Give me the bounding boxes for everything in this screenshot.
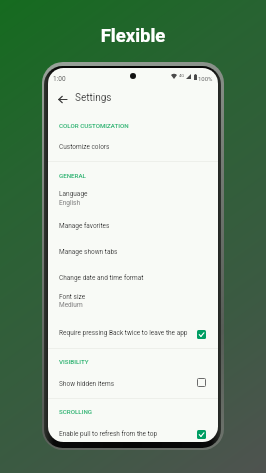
staticText: Manage favorites <box>59 222 110 230</box>
staticText: 100% <box>198 75 213 82</box>
button[interactable] <box>48 288 218 315</box>
staticText: Language <box>59 190 88 198</box>
staticText: Customize colors <box>59 143 110 151</box>
button[interactable] <box>48 372 218 395</box>
staticText: GENERAL <box>59 172 86 179</box>
button[interactable]: Back <box>53 90 71 108</box>
staticText: COLOR CUSTOMIZATION <box>59 122 129 129</box>
staticText: Medium <box>59 301 83 309</box>
button[interactable] <box>48 135 218 157</box>
staticText: VISIBILITY <box>59 358 89 365</box>
button[interactable] <box>48 241 218 264</box>
staticText: 4G <box>179 73 185 78</box>
button[interactable]: Toggle off <box>197 378 206 387</box>
staticText: Require pressing Back twice to leave the… <box>59 329 188 337</box>
button[interactable]: Toggle on <box>197 330 206 339</box>
staticText: Change date and time format <box>59 274 144 282</box>
staticText: Enable pull to refresh from the top <box>59 430 158 438</box>
button[interactable] <box>48 184 218 211</box>
staticText: Font size <box>59 293 86 301</box>
button[interactable] <box>48 421 218 441</box>
button[interactable] <box>48 267 218 289</box>
button[interactable] <box>48 215 218 238</box>
staticText: Show hidden items <box>59 380 114 388</box>
button[interactable] <box>48 322 218 345</box>
staticText: English <box>59 199 81 207</box>
staticText: SCROLLING <box>59 408 92 415</box>
staticText: Settings <box>75 92 112 104</box>
button[interactable]: Toggle on <box>197 430 206 439</box>
staticText: Flexible <box>0 25 266 47</box>
staticText: 1:00 <box>53 75 66 83</box>
staticText: Manage shown tabs <box>59 248 118 256</box>
